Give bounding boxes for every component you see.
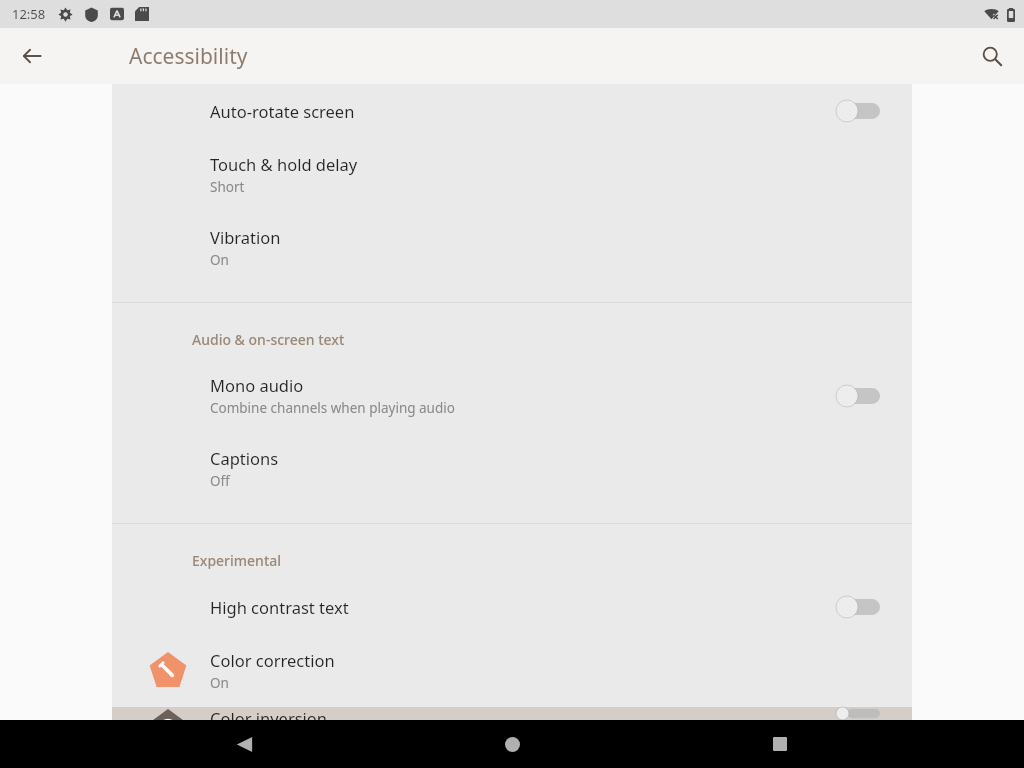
button[interactable]: Captions	[112, 432, 912, 505]
staticText: Touch & hold delay	[210, 153, 358, 175]
button[interactable]: Auto-rotate screen toggle	[832, 93, 884, 129]
button[interactable]: Vibration	[112, 211, 912, 284]
staticText: Auto-rotate screen	[210, 100, 355, 122]
button[interactable]: Color inversion toggle	[832, 707, 884, 720]
button[interactable]: High contrast text	[112, 580, 912, 634]
staticText: Combine channels when playing audio	[210, 399, 455, 417]
staticText: Short	[210, 178, 245, 196]
button[interactable]: Color inversion	[112, 707, 912, 720]
button[interactable]: High contrast text toggle	[832, 589, 884, 625]
button[interactable]: Auto-rotate screen	[112, 84, 912, 138]
button[interactable]: Color correction	[112, 634, 912, 707]
staticText: On	[210, 674, 229, 692]
button[interactable]: Back	[8, 32, 56, 80]
button[interactable]: Recents	[756, 720, 804, 768]
staticText: Color correction	[210, 649, 335, 671]
staticText: Experimental	[192, 551, 282, 570]
button[interactable]: Mono audio toggle	[832, 378, 884, 414]
button[interactable]: Back	[220, 720, 268, 768]
staticText: High contrast text	[210, 596, 349, 618]
staticText: Vibration	[210, 226, 281, 248]
staticText: Off	[210, 472, 230, 490]
staticText: Accessibility	[129, 42, 248, 71]
button[interactable]: Search	[968, 32, 1016, 80]
button[interactable]: Mono audio	[112, 359, 912, 432]
button[interactable]: Home	[488, 720, 536, 768]
staticText: Mono audio	[210, 374, 304, 396]
staticText: Color inversion	[210, 707, 328, 720]
staticText: On	[210, 251, 229, 269]
staticText: Captions	[210, 447, 279, 469]
staticText: Audio & on-screen text	[192, 330, 345, 349]
staticText: 12:58	[12, 5, 46, 23]
button[interactable]: Touch & hold delay	[112, 138, 912, 211]
